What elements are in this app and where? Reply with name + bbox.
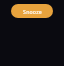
button[interactable]: Snooze	[11, 4, 53, 18]
staticText: Snooze	[23, 8, 42, 15]
